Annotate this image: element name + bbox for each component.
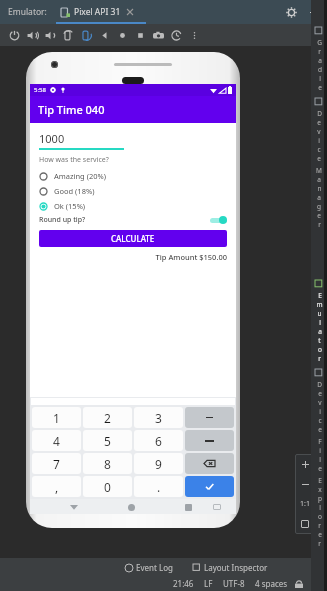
staticText: c bbox=[317, 145, 321, 154]
staticText: Amazing (20%) bbox=[54, 171, 106, 181]
staticText: d bbox=[318, 65, 322, 74]
staticText: l bbox=[319, 318, 321, 327]
staticText: G bbox=[317, 38, 322, 47]
staticText: F bbox=[318, 437, 322, 446]
button[interactable]: Amazing (20%) bbox=[39, 171, 227, 181]
button[interactable]: G bbox=[311, 24, 327, 95]
button[interactable]: Minimize bbox=[307, 5, 321, 19]
button[interactable]: Zoom in bbox=[295, 454, 315, 474]
staticText: c bbox=[318, 416, 322, 425]
staticText: p bbox=[318, 494, 322, 503]
staticText: E bbox=[318, 476, 322, 485]
button[interactable]: D bbox=[311, 366, 327, 551]
button[interactable]: 5 bbox=[83, 430, 132, 451]
button[interactable]: 4 bbox=[32, 430, 81, 451]
button[interactable]: Rotate right bbox=[77, 26, 95, 44]
button[interactable]: 21:46 bbox=[168, 578, 199, 589]
button[interactable]: 3 bbox=[134, 407, 183, 428]
button[interactable]: Layout Inspector bbox=[190, 562, 271, 573]
staticText: 7 bbox=[53, 456, 60, 472]
button[interactable]: Ok (15%) bbox=[39, 201, 227, 211]
button[interactable]: 1 bbox=[32, 407, 81, 428]
button[interactable]: Space bbox=[185, 430, 234, 451]
staticText: 4 bbox=[53, 433, 60, 449]
button[interactable]: Lock bbox=[293, 578, 304, 589]
button[interactable]: Round up tip? bbox=[39, 215, 227, 225]
button[interactable]: 8 bbox=[83, 453, 132, 474]
button[interactable]: Close tab bbox=[126, 8, 134, 16]
button[interactable]: Home bbox=[124, 500, 138, 514]
button[interactable]: Home bbox=[113, 26, 131, 44]
button[interactable]: Overview bbox=[131, 26, 149, 44]
button[interactable]: Recents bbox=[181, 500, 195, 514]
staticText: e bbox=[317, 211, 321, 220]
button[interactable]: Zoom out bbox=[295, 474, 315, 494]
button[interactable]: Enter bbox=[185, 476, 234, 497]
staticText: a bbox=[317, 193, 321, 202]
staticText: v bbox=[318, 398, 322, 407]
staticText: 1:1 bbox=[300, 499, 310, 509]
button[interactable]: Screenshot bbox=[149, 26, 167, 44]
staticText: E bbox=[318, 291, 322, 300]
button[interactable]: 9 bbox=[134, 453, 183, 474]
button[interactable]: LF bbox=[199, 578, 218, 589]
button[interactable]: Actual size bbox=[295, 494, 315, 514]
button[interactable]: Volume up bbox=[23, 26, 41, 44]
staticText: 2 bbox=[104, 410, 111, 426]
staticText: Round up tip? bbox=[39, 215, 86, 225]
staticText: Layout Inspector bbox=[204, 562, 268, 573]
staticText: r bbox=[318, 220, 321, 229]
staticText: x bbox=[318, 485, 322, 494]
button[interactable]: D bbox=[311, 95, 327, 232]
button[interactable]: Switch keyboard bbox=[210, 500, 224, 514]
button[interactable]: 4 spaces bbox=[250, 578, 293, 589]
staticText: 3 bbox=[155, 410, 162, 426]
button[interactable]: Settings bbox=[284, 5, 298, 19]
button[interactable]: Pixel API 31 bbox=[59, 6, 136, 18]
staticText: i bbox=[319, 446, 321, 455]
button[interactable]: E bbox=[311, 277, 327, 366]
button[interactable]: Back bbox=[95, 26, 113, 44]
staticText: a bbox=[318, 327, 322, 336]
staticText: e bbox=[317, 118, 321, 127]
staticText: r bbox=[318, 354, 321, 363]
staticText: e bbox=[318, 464, 322, 473]
button[interactable]: . bbox=[134, 476, 183, 497]
button[interactable]: Volume down bbox=[41, 26, 59, 44]
staticText: D bbox=[317, 380, 322, 389]
button[interactable]: , bbox=[32, 476, 81, 497]
button[interactable]: Minus bbox=[185, 407, 234, 428]
staticText: a bbox=[317, 175, 321, 184]
button[interactable]: 6 bbox=[134, 430, 183, 451]
button[interactable]: Back bbox=[67, 500, 81, 514]
staticText: r bbox=[318, 47, 321, 56]
staticText: 5 bbox=[104, 433, 111, 449]
staticText: 0 bbox=[104, 479, 111, 495]
button[interactable]: CALCULATE bbox=[39, 230, 227, 247]
staticText: e bbox=[318, 425, 322, 434]
button[interactable]: Rotate left bbox=[59, 26, 77, 44]
staticText: e bbox=[317, 154, 321, 163]
staticText: l bbox=[319, 503, 321, 512]
staticText: . bbox=[157, 479, 161, 495]
staticText: Pixel API 31 bbox=[74, 6, 121, 18]
button[interactable]: Good (18%) bbox=[39, 186, 227, 196]
button[interactable]: Notifications bbox=[310, 578, 321, 589]
button[interactable]: UTF-8 bbox=[218, 578, 250, 589]
button[interactable]: Event Log bbox=[122, 562, 176, 573]
staticText: t bbox=[318, 336, 321, 345]
staticText: u bbox=[317, 309, 322, 318]
staticText: , bbox=[55, 479, 59, 495]
button[interactable]: 7 bbox=[32, 453, 81, 474]
button[interactable]: History bbox=[167, 26, 185, 44]
staticText: 1000 bbox=[39, 131, 65, 146]
staticText: a bbox=[318, 56, 322, 65]
button[interactable]: Backspace bbox=[185, 453, 234, 474]
button[interactable]: Fit to window bbox=[295, 514, 315, 534]
button[interactable]: More bbox=[185, 26, 203, 44]
button[interactable]: Power bbox=[5, 26, 23, 44]
staticText: Good (18%) bbox=[54, 186, 95, 196]
button[interactable]: 2 bbox=[83, 407, 132, 428]
staticText: o bbox=[318, 345, 322, 354]
button[interactable]: 0 bbox=[83, 476, 132, 497]
